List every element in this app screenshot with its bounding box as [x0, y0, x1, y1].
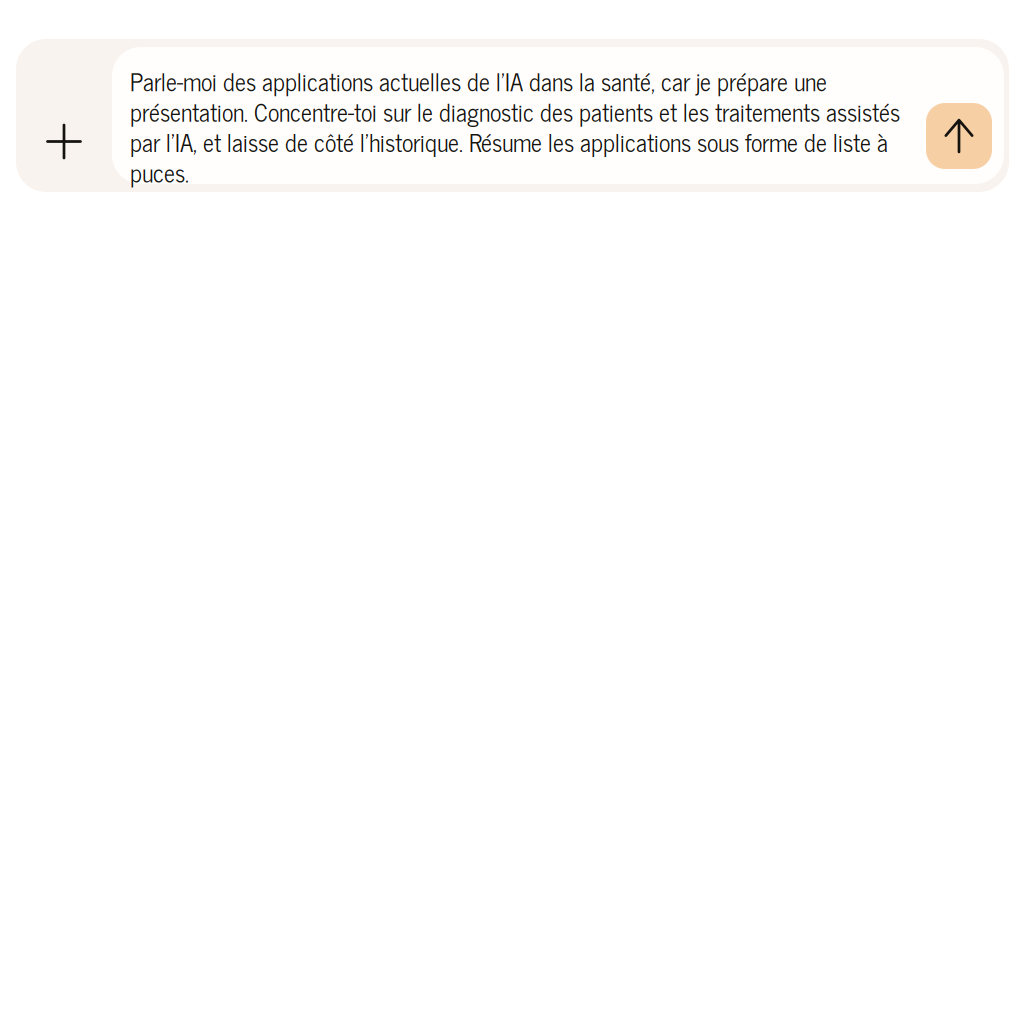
button[interactable]: Send message — [926, 103, 992, 169]
button[interactable]: Add attachment — [16, 39, 112, 192]
staticText: Parle-moi des applications actuelles de … — [130, 61, 900, 192]
